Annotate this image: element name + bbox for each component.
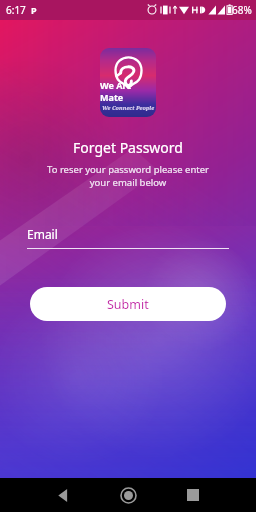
button[interactable]: Home: [113, 480, 143, 510]
button[interactable]: Recent apps: [178, 480, 208, 510]
other: We Are Mate logo: [100, 48, 156, 117]
button[interactable]: Email: [27, 226, 229, 249]
staticText: Forget Password: [73, 138, 183, 157]
staticText: To reser your password please enter your…: [47, 163, 209, 189]
staticText: We Connect People: [102, 104, 155, 111]
staticText: 68%: [232, 3, 252, 17]
staticText: Email: [27, 226, 58, 242]
button[interactable]: Back: [48, 480, 78, 510]
staticText: 6:17: [6, 3, 26, 17]
staticText: P: [31, 4, 37, 16]
staticText: Submit: [107, 296, 149, 313]
button[interactable]: Submit: [30, 287, 226, 321]
staticText: We Are Mate: [100, 79, 156, 103]
